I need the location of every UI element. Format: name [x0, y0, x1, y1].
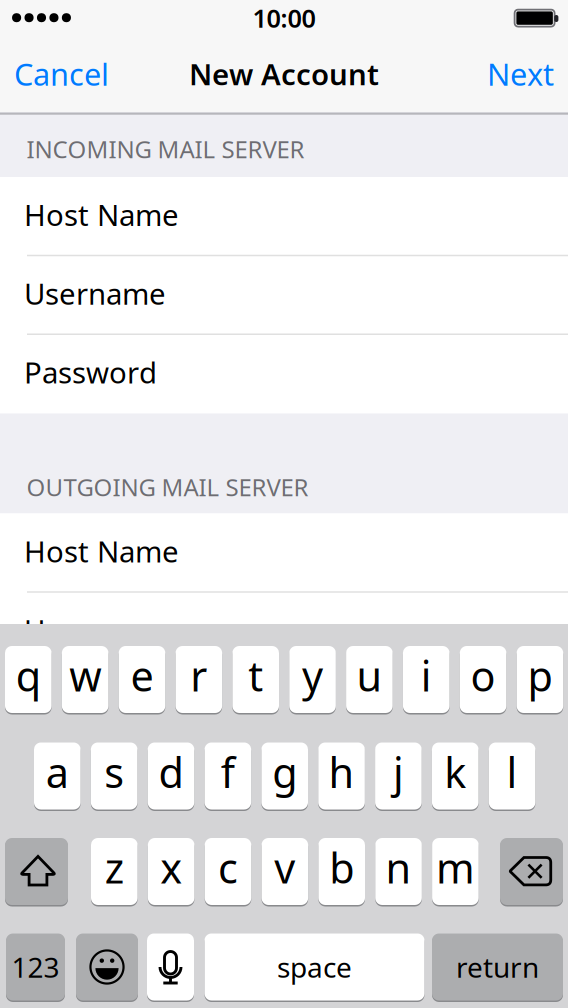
- button[interactable]: Emoji: [76, 933, 138, 1000]
- button[interactable]: Shift: [5, 838, 68, 905]
- staticText: h: [329, 745, 355, 799]
- staticText: 123: [11, 948, 59, 986]
- staticText: Host Name: [24, 195, 179, 234]
- staticText: l: [507, 745, 518, 799]
- staticText: e: [130, 648, 153, 703]
- button[interactable]: u: [346, 646, 393, 713]
- button[interactable]: r: [176, 646, 222, 713]
- staticText: 10:00: [252, 1, 315, 35]
- staticText: k: [444, 745, 466, 799]
- staticText: New Account: [189, 54, 379, 93]
- button[interactable]: return: [432, 933, 563, 1000]
- button[interactable]: Password: [0, 334, 568, 413]
- button[interactable]: z: [91, 838, 138, 905]
- staticText: q: [16, 648, 41, 703]
- staticText: OUTGOING MAIL SERVER: [26, 471, 308, 503]
- staticText: f: [221, 745, 235, 799]
- staticText: Username: [24, 274, 166, 313]
- staticText: z: [105, 840, 124, 895]
- button[interactable]: m: [432, 838, 479, 905]
- staticText: Password: [24, 353, 157, 392]
- button[interactable]: t: [232, 646, 279, 713]
- button[interactable]: space: [204, 933, 424, 1000]
- staticText: c: [218, 840, 238, 895]
- staticText: m: [436, 840, 475, 895]
- staticText: b: [329, 840, 354, 895]
- button[interactable]: d: [148, 742, 194, 809]
- button[interactable]: s: [91, 742, 137, 809]
- button[interactable]: p: [517, 646, 563, 713]
- button[interactable]: Username: [0, 256, 568, 335]
- button[interactable]: Cancel: [0, 35, 140, 112]
- staticText: u: [356, 648, 382, 703]
- staticText: Username: [24, 610, 166, 649]
- button[interactable]: h: [318, 742, 365, 809]
- button[interactable]: Next: [428, 35, 568, 112]
- button[interactable]: Dictation: [147, 933, 194, 1000]
- staticText: INCOMING MAIL SERVER: [26, 133, 304, 165]
- button[interactable]: Delete: [500, 838, 563, 905]
- staticText: Host Name: [24, 532, 179, 571]
- button[interactable]: g: [261, 742, 308, 809]
- staticText: w: [69, 648, 101, 703]
- button[interactable]: f: [205, 742, 251, 809]
- staticText: o: [471, 648, 496, 703]
- staticText: Cancel: [14, 53, 109, 94]
- button[interactable]: q: [5, 646, 52, 713]
- button[interactable]: y: [289, 646, 336, 713]
- staticText: x: [160, 840, 182, 895]
- staticText: return: [456, 948, 539, 986]
- staticText: g: [272, 745, 297, 799]
- staticText: r: [190, 648, 207, 703]
- staticText: n: [386, 840, 412, 895]
- button[interactable]: 123: [6, 933, 65, 1000]
- button[interactable]: v: [262, 838, 308, 905]
- staticText: a: [46, 745, 69, 799]
- button[interactable]: Host Name: [0, 513, 568, 592]
- button[interactable]: a: [34, 742, 81, 809]
- button[interactable]: x: [148, 838, 194, 905]
- staticText: t: [248, 648, 263, 703]
- button[interactable]: o: [460, 646, 506, 713]
- staticText: s: [104, 745, 124, 799]
- button[interactable]: e: [119, 646, 165, 713]
- staticText: space: [277, 948, 352, 986]
- staticText: y: [302, 648, 323, 703]
- staticText: d: [158, 745, 183, 799]
- button[interactable]: i: [403, 646, 449, 713]
- button[interactable]: j: [375, 742, 422, 809]
- button[interactable]: Host Name: [0, 177, 568, 256]
- button[interactable]: Username: [0, 592, 568, 671]
- staticText: i: [421, 648, 432, 703]
- staticText: j: [393, 745, 404, 799]
- staticText: Next: [487, 53, 554, 94]
- button[interactable]: n: [375, 838, 422, 905]
- button[interactable]: b: [318, 838, 365, 905]
- button[interactable]: c: [205, 838, 251, 905]
- button[interactable]: l: [489, 742, 535, 809]
- button[interactable]: k: [432, 742, 478, 809]
- staticText: p: [527, 648, 552, 703]
- staticText: v: [274, 840, 295, 895]
- button[interactable]: w: [62, 646, 108, 713]
